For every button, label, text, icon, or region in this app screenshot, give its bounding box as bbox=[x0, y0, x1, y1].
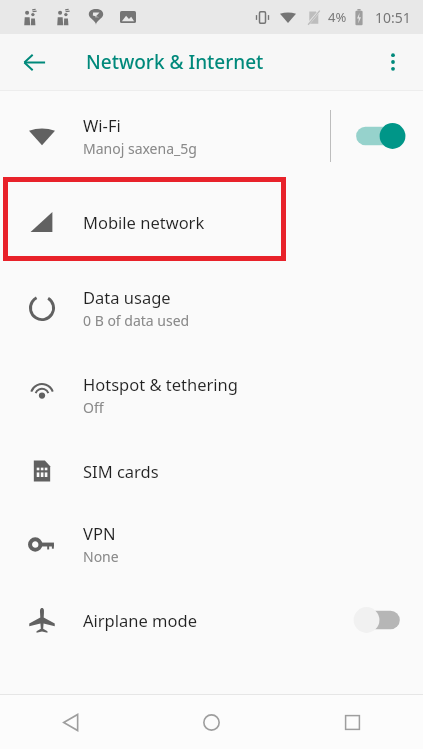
button[interactable]: Recent apps bbox=[282, 695, 423, 749]
staticText: 0 B of data used bbox=[83, 311, 190, 330]
staticText: Wi-Fi bbox=[83, 114, 121, 136]
button[interactable]: Home bbox=[141, 695, 282, 749]
button[interactable]: Wi-Fi toggle on bbox=[353, 121, 405, 151]
button[interactable]: Mobile network bbox=[0, 180, 423, 264]
button[interactable]: Data usage bbox=[0, 264, 423, 352]
staticText: None bbox=[83, 547, 119, 566]
button[interactable]: Back bbox=[10, 38, 58, 86]
staticText: VPN bbox=[83, 522, 116, 544]
staticText: Mobile network bbox=[83, 211, 205, 233]
button[interactable]: SIM cards bbox=[0, 438, 423, 504]
button[interactable]: More options bbox=[369, 38, 417, 86]
button[interactable]: VPN bbox=[0, 504, 423, 584]
staticText: Data usage bbox=[83, 286, 171, 308]
button[interactable]: Hotspot & tethering bbox=[0, 352, 423, 438]
button[interactable]: Airplane mode toggle off bbox=[353, 605, 405, 635]
staticText: Off bbox=[83, 398, 104, 417]
staticText: Airplane mode bbox=[83, 609, 197, 631]
button[interactable]: Wi-Fi bbox=[0, 92, 423, 180]
staticText: Network & Internet bbox=[86, 49, 264, 75]
button[interactable]: Back bbox=[0, 695, 141, 749]
staticText: 4% bbox=[328, 8, 347, 26]
staticText: 10:51 bbox=[375, 8, 411, 27]
staticText: Hotspot & tethering bbox=[83, 373, 238, 395]
staticText: Manoj saxena_5g bbox=[83, 139, 197, 158]
staticText: SIM cards bbox=[83, 460, 159, 482]
button[interactable]: Airplane mode bbox=[0, 584, 423, 656]
